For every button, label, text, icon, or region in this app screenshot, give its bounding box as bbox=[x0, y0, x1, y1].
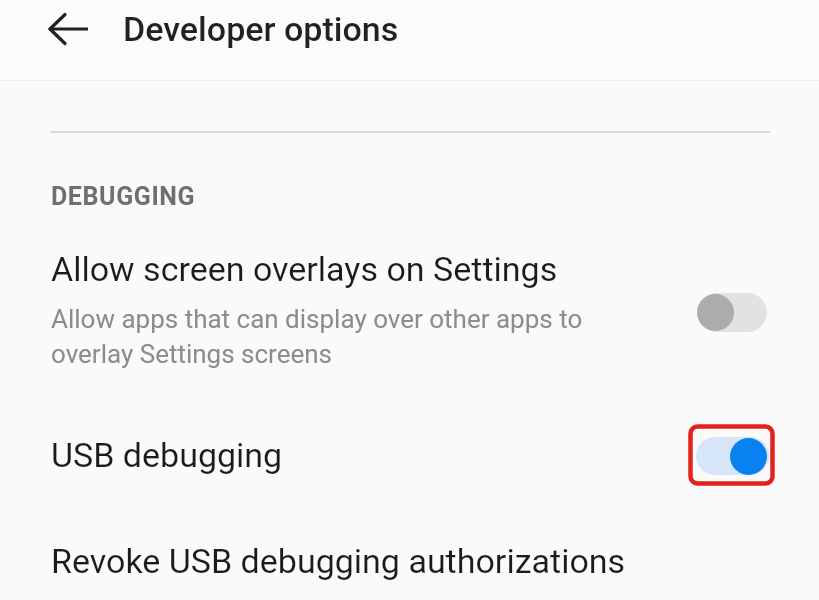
staticText: USB debugging bbox=[51, 435, 283, 475]
staticText: DEBUGGING bbox=[51, 182, 196, 211]
staticText: Revoke USB debugging authorizations bbox=[51, 541, 626, 581]
button[interactable]: Allow screen overlays on Settings bbox=[0, 240, 819, 390]
button[interactable] bbox=[40, 1, 98, 59]
staticText: Developer options bbox=[123, 9, 399, 49]
button[interactable]: USB debugging bbox=[0, 420, 819, 510]
button[interactable]: Revoke USB debugging authorizations bbox=[0, 528, 819, 600]
staticText: Allow screen overlays on Settings bbox=[51, 249, 558, 289]
staticText: Allow apps that can display over other a… bbox=[51, 304, 583, 369]
